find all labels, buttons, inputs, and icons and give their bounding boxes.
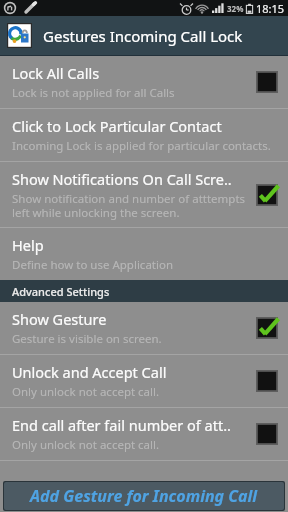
button[interactable]: End call after fail number of att..: [0, 408, 288, 460]
button[interactable]: Unchecked: [254, 69, 280, 95]
staticText: End call after fail number of att..: [12, 415, 231, 435]
button[interactable]: Lock All Calls: [0, 56, 288, 108]
staticText: Lock is not applied for all Calls: [12, 85, 175, 101]
staticText: Incoming Lock is applied for particular …: [12, 138, 271, 154]
button[interactable]: Unchecked: [254, 368, 280, 394]
button[interactable]: Add Gesture for Incoming Call: [4, 482, 284, 510]
button[interactable]: Unlock and Accept Call: [0, 355, 288, 407]
button[interactable]: Unchecked: [254, 421, 280, 447]
staticText: 18:15: [256, 1, 285, 16]
staticText: 32%: [227, 3, 244, 14]
button[interactable]: Checked: [254, 315, 280, 341]
staticText: Add Gesture for Incoming Call: [30, 485, 258, 507]
button[interactable]: Show Gesture: [0, 302, 288, 354]
staticText: Help: [12, 235, 44, 255]
staticText: Gesture is visible on screen.: [12, 331, 162, 347]
staticText: Show Gesture: [12, 309, 107, 329]
staticText: Show notification and number of atttempt…: [12, 191, 246, 220]
staticText: Click to Lock Particular Contact: [12, 116, 222, 136]
button[interactable]: Help: [0, 228, 288, 280]
button[interactable]: Checked: [254, 182, 280, 208]
staticText: Only unlock not accept call.: [12, 437, 160, 453]
button[interactable]: Show Notifications On Call Scre..: [0, 162, 288, 227]
staticText: Lock All Calls: [12, 63, 100, 83]
staticText: Gestures Incoming Call Lock: [43, 26, 243, 46]
staticText: Define how to use Application: [12, 257, 174, 273]
staticText: Show Notifications On Call Scre..: [12, 169, 232, 189]
staticText: Only unlock not accept call.: [12, 384, 160, 400]
button[interactable]: Click to Lock Particular Contact: [0, 109, 288, 161]
staticText: Unlock and Accept Call: [12, 362, 167, 382]
staticText: Advanced Settings: [12, 284, 110, 299]
